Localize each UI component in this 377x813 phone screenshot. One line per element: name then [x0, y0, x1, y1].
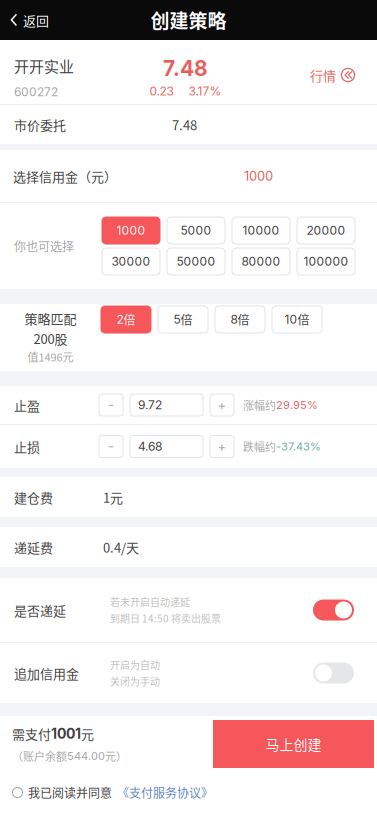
button[interactable]: 100000 — [297, 248, 355, 275]
button[interactable]: 是否递延 — [313, 599, 354, 620]
staticText: - — [108, 439, 114, 454]
staticText: （账户余额 — [12, 748, 67, 764]
button[interactable]: 2 — [101, 306, 151, 333]
staticText: 若未开启自动递延 — [110, 594, 190, 609]
staticText: 建仓费 — [14, 488, 53, 506]
staticText: 50000 — [176, 254, 215, 269]
staticText: 元 — [81, 724, 94, 743]
button[interactable]: 我已阅读并同意 — [0, 784, 213, 801]
staticText: 倍 — [123, 311, 135, 328]
staticText: 递延费 — [14, 538, 53, 556]
staticText: 10 — [284, 312, 297, 327]
staticText: 20000 — [306, 223, 345, 238]
staticText: 你也可选择 — [14, 237, 74, 255]
staticText: 跌幅约 — [243, 438, 276, 454]
staticText: 策略匹配 — [24, 309, 76, 328]
staticText: 倍 — [237, 311, 249, 328]
staticText: 市价委托 — [14, 115, 66, 134]
staticText: + — [217, 397, 226, 413]
staticText: 5000 — [180, 223, 211, 238]
button[interactable]: 马上创建 — [213, 720, 374, 768]
staticText: 返回 — [23, 11, 49, 29]
staticText: 30000 — [111, 254, 150, 269]
button[interactable]: 50000 — [167, 248, 225, 275]
staticText: 80000 — [241, 254, 280, 269]
staticText: 我已阅读并同意 — [28, 784, 112, 801]
button[interactable]: 10 — [272, 306, 322, 333]
staticText: 值1496元 — [27, 349, 73, 364]
staticText: 追加信用金 — [14, 664, 79, 682]
button[interactable]: Increase — [210, 394, 234, 416]
staticText: 8 — [230, 312, 237, 327]
staticText: 创建策略 — [150, 6, 226, 34]
staticText: 开启为自动 — [110, 657, 160, 672]
staticText: 7.48 — [163, 55, 208, 81]
staticText: 关闭为手动 — [110, 674, 160, 688]
button[interactable]: 追加信用金 — [313, 662, 354, 683]
button[interactable]: 80000 — [232, 248, 290, 275]
staticText: 倍 — [180, 311, 192, 328]
staticText: 行情 — [310, 66, 336, 84]
staticText: 7.48 — [172, 115, 197, 134]
staticText: 0.4/天 — [103, 538, 139, 556]
button[interactable]: 8 — [215, 306, 265, 333]
button[interactable]: 10000 — [232, 217, 290, 244]
staticText: 5 — [173, 312, 180, 327]
button[interactable]: 1000 — [102, 217, 160, 244]
staticText: 0.23 — [149, 84, 173, 98]
staticText: 需支付 — [12, 724, 51, 743]
staticText: 2 — [116, 312, 123, 327]
button[interactable]: Increase — [210, 435, 234, 457]
button[interactable]: Decrease — [99, 435, 123, 457]
staticText: 《支付服务协议》 — [117, 784, 213, 801]
staticText: 开开实业 — [14, 55, 74, 77]
staticText: 元） — [105, 748, 127, 764]
button[interactable]: 5 — [158, 306, 208, 333]
staticText: 1001 — [51, 725, 81, 742]
button[interactable]: 30000 — [102, 248, 160, 275]
staticText: 选择信用金（元） — [13, 167, 117, 185]
staticText: 1000 — [116, 223, 145, 238]
button[interactable]: 行情 — [310, 60, 377, 84]
staticText: 600272 — [14, 85, 58, 99]
staticText: 100000 — [303, 254, 348, 269]
button[interactable]: 返回 — [0, 0, 59, 40]
staticText: 止损 — [14, 437, 40, 456]
staticText: 544.00 — [67, 749, 105, 763]
staticText: 倍 — [297, 311, 309, 328]
staticText: 3.17% — [188, 84, 221, 98]
button[interactable]: 20000 — [297, 217, 355, 244]
staticText: 马上创建 — [265, 734, 321, 754]
staticText: -37.43% — [276, 440, 321, 453]
staticText: 到期日 14:50 将卖出股票 — [110, 611, 221, 625]
staticText: 4.68 — [138, 439, 162, 454]
staticText: 10000 — [242, 223, 279, 238]
staticText: 9.72 — [138, 398, 162, 412]
staticText: 1000 — [244, 168, 273, 184]
staticText: 200股 — [33, 329, 67, 348]
staticText: 29.95% — [276, 398, 318, 412]
staticText: + — [217, 439, 226, 454]
button[interactable]: 5000 — [167, 217, 225, 244]
staticText: 是否递延 — [14, 601, 66, 619]
staticText: - — [108, 397, 114, 413]
button[interactable]: Decrease — [99, 394, 123, 416]
staticText: 1元 — [103, 488, 123, 506]
staticText: 涨幅约 — [243, 397, 276, 413]
staticText: 止盈 — [14, 396, 40, 414]
